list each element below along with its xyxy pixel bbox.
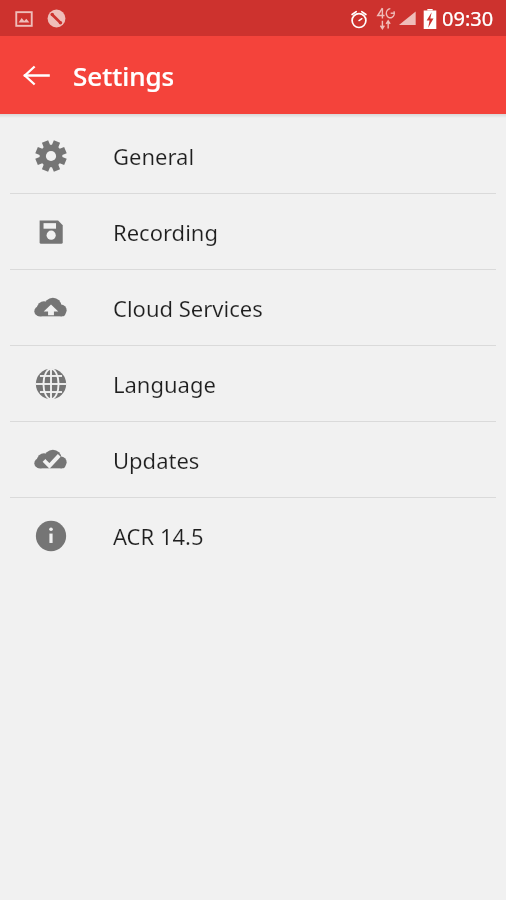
button[interactable]: Language [0,346,506,421]
button[interactable]: General [0,118,506,193]
staticText: ACR 14.5 [113,521,204,551]
button[interactable]: Recording [0,194,506,269]
staticText: 09:30 [442,5,494,32]
staticText: Recording [113,217,218,247]
staticText: Updates [113,445,200,475]
staticText: Settings [73,58,175,93]
button[interactable]: Updates [0,422,506,497]
staticText: Cloud Services [113,293,263,323]
staticText: General [113,141,195,171]
button[interactable]: ACR 14.5 [0,498,506,573]
button[interactable]: Back [8,47,64,103]
button[interactable]: Cloud Services [0,270,506,345]
staticText: Language [113,369,216,399]
